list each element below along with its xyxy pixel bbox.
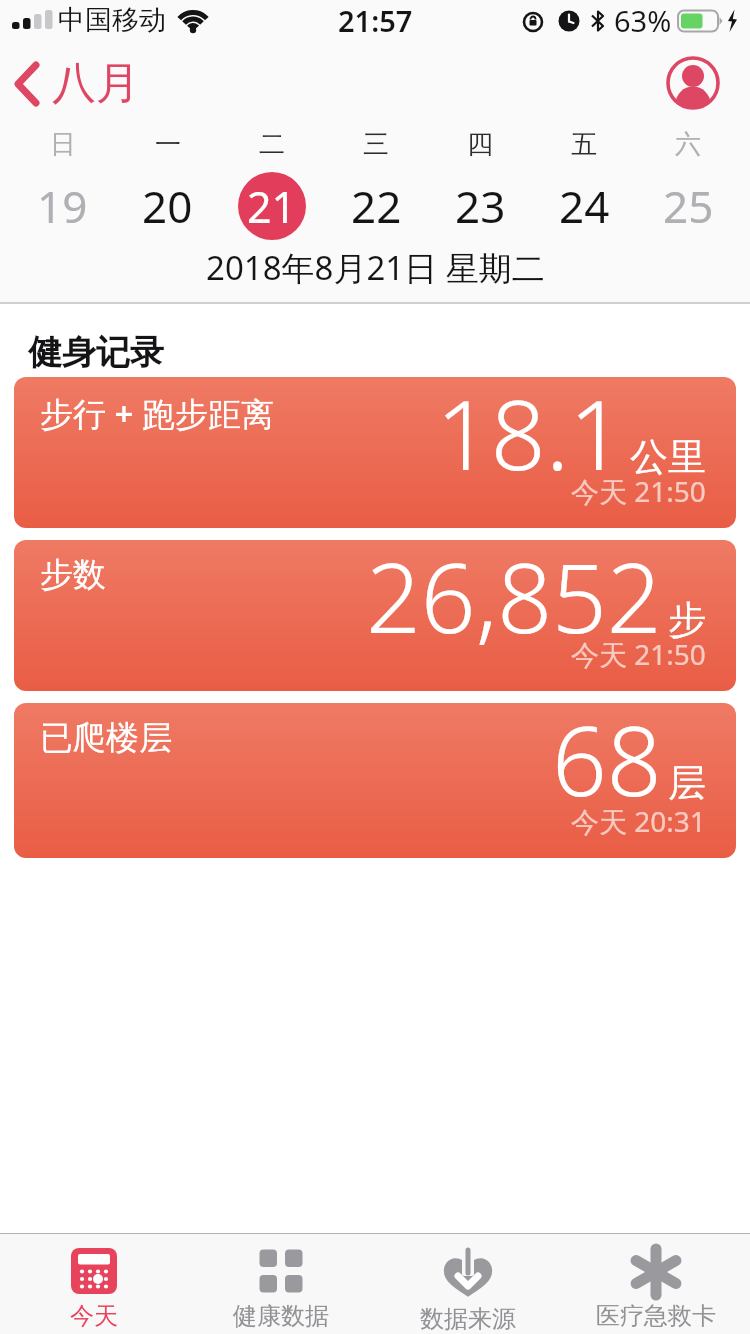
staticText: 今天 [70, 1301, 118, 1331]
button[interactable]: 步数 [14, 540, 736, 691]
staticText: 21:57 [338, 1, 413, 40]
staticText: 2018年8月21日 星期二 [206, 245, 545, 290]
staticText: 一 [155, 128, 181, 161]
staticText: 21 [247, 177, 297, 236]
staticText: 二 [259, 128, 285, 161]
staticText: 中国移动 [58, 3, 166, 37]
staticText: 医疗急救卡 [596, 1301, 716, 1331]
button[interactable]: 健康数据 [187, 1248, 374, 1334]
button[interactable]: 20 [115, 162, 220, 250]
button[interactable]: 医疗急救卡 [562, 1248, 750, 1334]
staticText: 健身记录 [28, 331, 164, 374]
staticText: 步数 [40, 554, 106, 596]
button[interactable] [666, 56, 720, 110]
staticText: 健康数据 [233, 1301, 329, 1331]
button[interactable]: 19 [10, 162, 115, 250]
staticText: 今天 20:31 [571, 802, 706, 840]
staticText: 26,852 [366, 540, 662, 661]
staticText: 19 [37, 176, 88, 236]
staticText: 68 [552, 703, 662, 824]
staticText: 三 [363, 128, 389, 161]
staticText: 步行 + 跑步距离 [40, 391, 275, 436]
button[interactable]: 25 [636, 162, 740, 250]
button[interactable]: 21 [220, 162, 324, 250]
button[interactable]: 已爬楼层 [14, 703, 736, 858]
staticText: 今天 21:50 [571, 472, 706, 510]
staticText: 20 [142, 176, 193, 236]
button[interactable]: 今天 [0, 1248, 187, 1334]
staticText: 层 [668, 759, 706, 807]
staticText: 63% [614, 1, 672, 40]
staticText: 五 [571, 128, 597, 161]
staticText: 八月 [52, 56, 140, 111]
staticText: 18.1 [436, 377, 624, 498]
button[interactable]: 23 [428, 162, 532, 250]
staticText: 四 [467, 128, 493, 161]
button[interactable]: 24 [532, 162, 636, 250]
staticText: 24 [559, 176, 610, 236]
staticText: 步 [668, 596, 706, 644]
staticText: 数据来源 [420, 1304, 516, 1334]
staticText: 25 [663, 176, 714, 236]
button[interactable]: 八月 [12, 56, 140, 111]
staticText: 23 [455, 176, 506, 236]
button[interactable]: 数据来源 [374, 1248, 562, 1334]
staticText: 今天 21:50 [571, 635, 706, 673]
button[interactable]: 22 [324, 162, 428, 250]
staticText: 22 [351, 176, 402, 236]
staticText: 六 [675, 128, 701, 161]
button[interactable]: 步行 + 跑步距离 [14, 377, 736, 528]
staticText: 公里 [630, 433, 706, 481]
staticText: 已爬楼层 [40, 717, 172, 759]
staticText: 日 [50, 128, 76, 161]
